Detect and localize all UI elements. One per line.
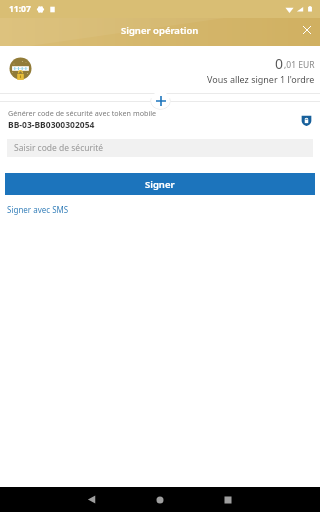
staticText: 11:07 xyxy=(9,3,31,15)
button[interactable]: Fermer xyxy=(296,19,318,41)
staticText: Saisir code de sécurité xyxy=(14,142,104,154)
staticText: Vous allez signer 1 l'ordre xyxy=(207,73,315,85)
button[interactable]: Applications récentes xyxy=(215,487,240,512)
button[interactable]: Token de sécurité xyxy=(297,111,315,129)
staticText: Générer code de sécurité avec token mobi… xyxy=(8,108,157,118)
staticText: ,01 EUR xyxy=(284,59,315,71)
staticText: Signer avec SMS xyxy=(7,204,69,215)
button[interactable]: Signer avec SMS xyxy=(7,204,69,215)
button[interactable]: Accueil xyxy=(147,487,172,512)
button[interactable]: Retour xyxy=(79,487,104,512)
button[interactable]: Saisir code de sécurité xyxy=(7,139,313,157)
staticText: Signer xyxy=(145,178,175,191)
staticText: Signer opération xyxy=(121,24,199,37)
button[interactable]: Ajouter xyxy=(150,92,171,110)
staticText: BB-03-BB0300302054 xyxy=(8,119,95,131)
staticText: 0 xyxy=(275,54,284,73)
button[interactable]: Signer xyxy=(5,173,315,195)
